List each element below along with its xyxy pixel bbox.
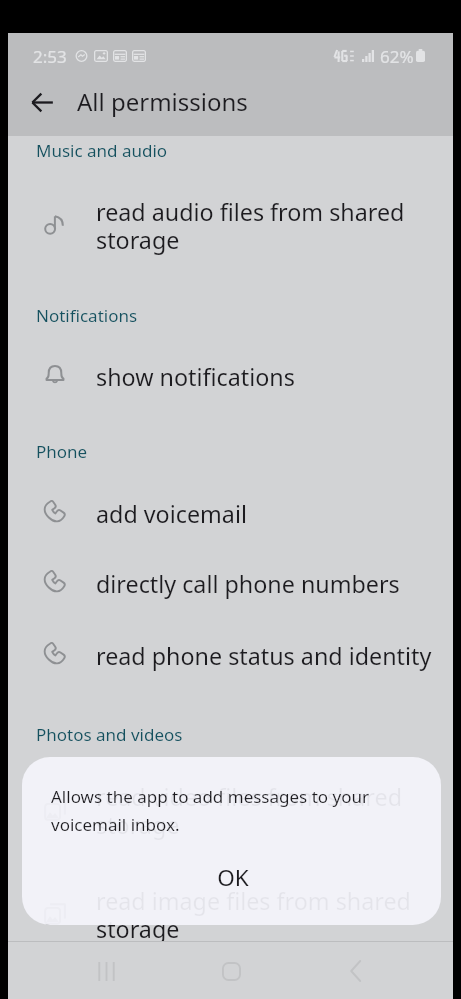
button[interactable]: Navigate up — [20, 80, 64, 124]
staticText: All permissions — [77, 85, 248, 118]
staticText: Music and audio — [36, 139, 168, 162]
button[interactable]: directly call phone numbers — [8, 556, 453, 620]
staticText: add voicemail — [96, 498, 440, 530]
staticText: 62% — [380, 45, 414, 68]
staticText: 2:53 — [33, 45, 67, 68]
staticText: Notifications — [36, 304, 138, 327]
button[interactable]: Recent apps — [64, 941, 148, 999]
staticText: Phone — [36, 440, 88, 463]
staticText: Allows the app to add messages to your v… — [51, 785, 376, 836]
button[interactable]: Back — [314, 941, 398, 999]
staticText: show notifications — [96, 361, 440, 393]
staticText: read audio files from shared storage — [96, 196, 440, 256]
staticText: read video files from shared storage — [96, 781, 440, 841]
staticText: Photos and videos — [36, 723, 183, 746]
button[interactable]: Home — [189, 941, 273, 999]
button[interactable]: show notifications — [8, 349, 453, 413]
button[interactable]: OK — [185, 856, 281, 898]
staticText: read phone status and identity — [96, 640, 440, 672]
button[interactable]: read audio files from shared storage — [8, 184, 453, 266]
button[interactable]: read video files from shared storage — [8, 769, 453, 851]
staticText: OK — [217, 862, 249, 893]
button[interactable]: read phone status and identity — [8, 628, 453, 692]
button[interactable]: add voicemail — [8, 486, 453, 550]
staticText: directly call phone numbers — [96, 568, 440, 600]
staticText: read image files from shared storage — [96, 885, 440, 945]
button[interactable]: read image files from shared storage — [8, 873, 453, 955]
